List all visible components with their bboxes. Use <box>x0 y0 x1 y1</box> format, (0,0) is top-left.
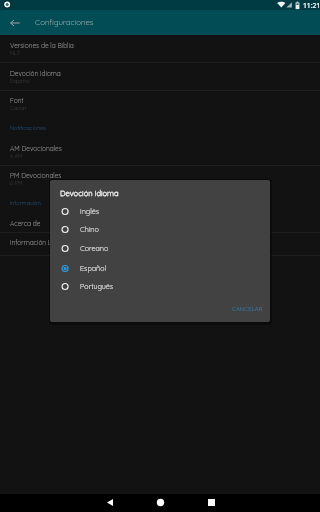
staticText: Coreano <box>80 244 109 253</box>
staticText: 6 PM <box>10 179 23 186</box>
button[interactable] <box>0 212 320 232</box>
staticText: Portugués <box>80 282 114 291</box>
staticText: Notificaciones <box>10 124 46 131</box>
button[interactable] <box>0 62 320 90</box>
button[interactable]: Back <box>2 10 27 35</box>
staticText: Caviar <box>10 104 27 111</box>
staticText: Devoción Idioma <box>10 69 61 77</box>
button[interactable] <box>0 165 320 193</box>
staticText: NLT <box>10 49 21 56</box>
staticText: Información Legal <box>10 238 65 246</box>
staticText: PM Devocionales <box>10 171 62 179</box>
button[interactable]: Coreano <box>50 239 270 258</box>
staticText: Español <box>80 264 106 273</box>
button[interactable]: Chino <box>50 220 270 239</box>
staticText: Español <box>10 77 31 84</box>
staticText: Font <box>10 96 24 104</box>
staticText: Inglés <box>80 207 100 216</box>
staticText: Configuraciones <box>35 17 94 27</box>
button[interactable]: Portugués <box>50 277 270 296</box>
button[interactable]: Español <box>50 259 270 278</box>
staticText: Devoción Idioma <box>60 188 119 197</box>
button[interactable]: CANCELAR <box>227 300 267 317</box>
button[interactable]: Home <box>148 494 172 512</box>
staticText: Chino <box>80 225 99 234</box>
button[interactable]: Inglés <box>50 202 270 221</box>
staticText: Información <box>10 199 41 206</box>
button[interactable] <box>0 90 320 118</box>
button[interactable]: Recents <box>199 494 223 512</box>
button[interactable] <box>0 35 320 62</box>
staticText: 6 AM <box>10 152 23 159</box>
staticText: 11:21 <box>303 1 320 10</box>
staticText: AM Devocionales <box>10 144 62 152</box>
button[interactable] <box>0 137 320 165</box>
staticText: Acerca de <box>10 219 41 227</box>
button[interactable] <box>0 232 320 255</box>
button[interactable]: Back <box>98 494 122 512</box>
staticText: Versiones de la Biblia <box>10 41 74 49</box>
staticText: CANCELAR <box>232 305 263 313</box>
